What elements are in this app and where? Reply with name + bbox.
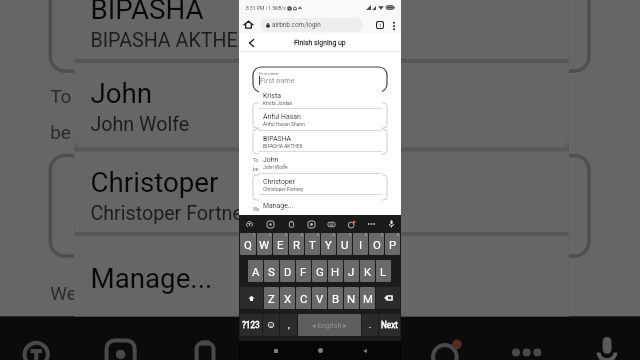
staticText: BIPASHA AKTHER [263,143,303,149]
button[interactable]: S [264,260,279,282]
button[interactable]: 7 [337,233,352,255]
button[interactable]: Backspace [376,287,400,309]
button[interactable]: Christoper [74,147,569,232]
button[interactable]: Shift [240,287,263,309]
staticText: Ariful Hasan [263,113,301,121]
staticText: Christoper Fortney [263,186,304,192]
staticText: Christoper [263,178,295,186]
staticText: , [288,320,290,330]
button[interactable]: , [280,314,297,336]
staticText: Christoper [90,168,219,200]
button[interactable]: 1 [240,233,256,255]
button[interactable]: M [360,287,375,309]
button[interactable]: Back [356,342,373,359]
button[interactable]: H [328,260,343,282]
staticText: X [284,292,292,305]
staticText: 4 [301,233,303,237]
button[interactable]: 6 [321,233,336,255]
button[interactable]: D [280,260,295,282]
staticText: U [341,238,349,251]
button[interactable]: 4 [289,233,304,255]
button[interactable]: J [344,260,359,282]
button[interactable]: More [361,215,381,233]
button[interactable]: A [248,260,263,282]
button[interactable]: Z [264,287,279,309]
staticText: Q [244,238,252,251]
button[interactable]: Back [245,37,257,49]
button[interactable]: airbnb.com/login [260,18,363,32]
button[interactable]: Theme [404,316,484,360]
button[interactable]: Translate [0,316,78,360]
button[interactable]: Theme [341,215,361,233]
button[interactable]: C [296,287,311,309]
button[interactable]: Sticker [260,215,281,233]
button[interactable]: More options [387,19,400,32]
button[interactable]: F [296,260,311,282]
staticText: J [348,265,355,278]
button[interactable]: ◂ English ▸ [298,314,361,336]
button[interactable]: Voice input [565,316,640,360]
button[interactable]: Ariful Hasan [259,108,382,129]
button[interactable]: Krista [259,87,382,108]
button[interactable]: BIPASHA [74,0,569,59]
staticText: Manage... [90,264,215,296]
staticText: T [309,238,316,251]
button[interactable]: 9 [369,233,384,255]
button[interactable]: GIF [243,316,324,360]
staticText: I [359,238,363,251]
button[interactable]: N [344,287,359,309]
button[interactable]: 3 [273,233,288,255]
button[interactable]: . [362,314,378,336]
staticText: C [300,292,308,305]
button[interactable]: Clipboard [281,215,301,233]
button[interactable]: 5 [305,233,320,255]
staticText: P [389,238,397,251]
staticText: First name [259,71,279,76]
button[interactable]: Tabs [373,18,387,32]
button[interactable]: X [280,287,295,309]
staticText: To make sure this all [253,158,296,164]
staticText: W [259,238,270,251]
button[interactable]: Settings [321,215,341,233]
button[interactable]: Next [379,314,400,336]
button[interactable]: Translate [239,215,260,233]
staticText: V [316,292,324,305]
staticText: First name [260,76,295,85]
button[interactable]: Manage... [259,194,382,215]
button[interactable]: Emoji [263,314,279,336]
button[interactable]: ?123 [240,314,262,336]
button[interactable]: John [259,151,382,172]
staticText: B [332,292,340,305]
staticText: BIPASHA AKTHER [90,27,251,51]
staticText: R [293,238,301,251]
staticText: John [263,156,279,164]
button[interactable]: V [312,287,327,309]
button[interactable]: 2 [257,233,272,255]
staticText: F [300,265,307,278]
button[interactable]: 0 [385,233,400,255]
button[interactable]: G [312,260,327,282]
button[interactable]: More [484,316,565,360]
staticText: be exactly as it [253,167,284,173]
button[interactable]: Christoper [259,173,382,194]
button[interactable]: Settings [324,316,404,360]
button[interactable]: First name [253,67,387,92]
staticText: Krista Jordan [263,100,293,106]
button[interactable]: BIPASHA [259,130,382,151]
button[interactable]: John [74,59,569,143]
button[interactable]: GIF [301,215,321,233]
staticText: airbnb.com/login [272,21,321,29]
button[interactable]: L [376,260,391,282]
button[interactable]: Clipboard [163,316,243,360]
button[interactable]: K [360,260,375,282]
staticText: John Wolfe [90,111,191,135]
button[interactable]: Manage... [74,232,569,316]
button[interactable]: Home [242,18,255,31]
button[interactable]: B [328,287,343,309]
button[interactable]: Recents [267,342,284,359]
button[interactable]: 8 [353,233,368,255]
button[interactable]: Home [312,342,329,359]
button[interactable]: Sticker [78,316,163,360]
button[interactable]: Voice input [381,215,401,233]
staticText: Y [325,238,332,251]
